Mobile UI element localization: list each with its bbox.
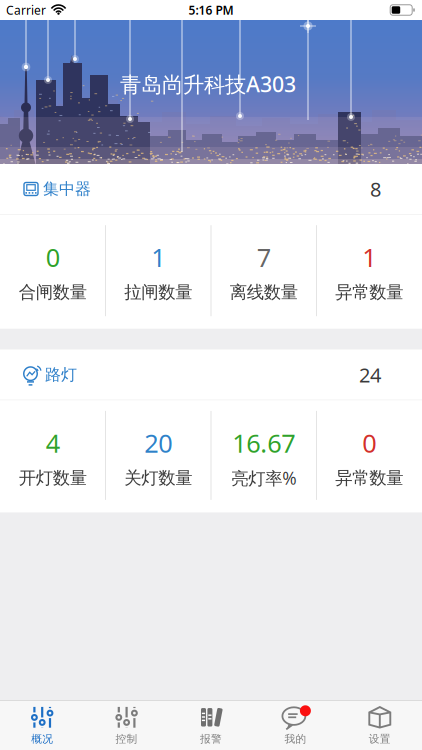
staticText: 4 (46, 426, 60, 460)
staticText: 概况 (31, 732, 53, 745)
staticText: 报警 (200, 732, 222, 745)
staticText: 7 (257, 240, 271, 274)
staticText: 0 (46, 240, 60, 274)
staticText: 5:16 PM (188, 2, 233, 18)
staticText: 24 (359, 361, 381, 388)
button[interactable]: 路灯 (0, 350, 422, 400)
button[interactable]: 报警 (169, 701, 253, 749)
button[interactable]: 概况 (0, 701, 84, 749)
button[interactable]: 控制 (84, 701, 169, 749)
staticText: 路灯 (45, 365, 77, 385)
staticText: 集中器 (43, 179, 91, 199)
button[interactable]: 设置 (338, 701, 422, 749)
staticText: 我的 (284, 732, 306, 745)
staticText: Carrier (6, 2, 46, 18)
staticText: 开灯数量 (19, 467, 87, 489)
staticText: 关灯数量 (124, 467, 192, 489)
staticText: 离线数量 (230, 282, 298, 303)
staticText: 拉闸数量 (124, 282, 192, 303)
staticText: 青岛尚升科技A303 (120, 70, 296, 98)
staticText: 16.67 (232, 426, 295, 460)
staticText: 异常数量 (335, 282, 403, 303)
button[interactable]: 我的 (253, 701, 338, 749)
staticText: 设置 (369, 732, 391, 745)
staticText: 1 (151, 240, 165, 274)
staticText: 8 (370, 176, 381, 202)
staticText: 0 (362, 426, 376, 460)
button[interactable]: 集中器 (0, 164, 422, 215)
staticText: 异常数量 (335, 467, 403, 489)
staticText: 控制 (116, 732, 138, 745)
staticText: 亮灯率% (231, 466, 296, 489)
staticText: 1 (362, 240, 376, 274)
staticText: 合闸数量 (19, 282, 87, 303)
staticText: 20 (144, 426, 172, 460)
